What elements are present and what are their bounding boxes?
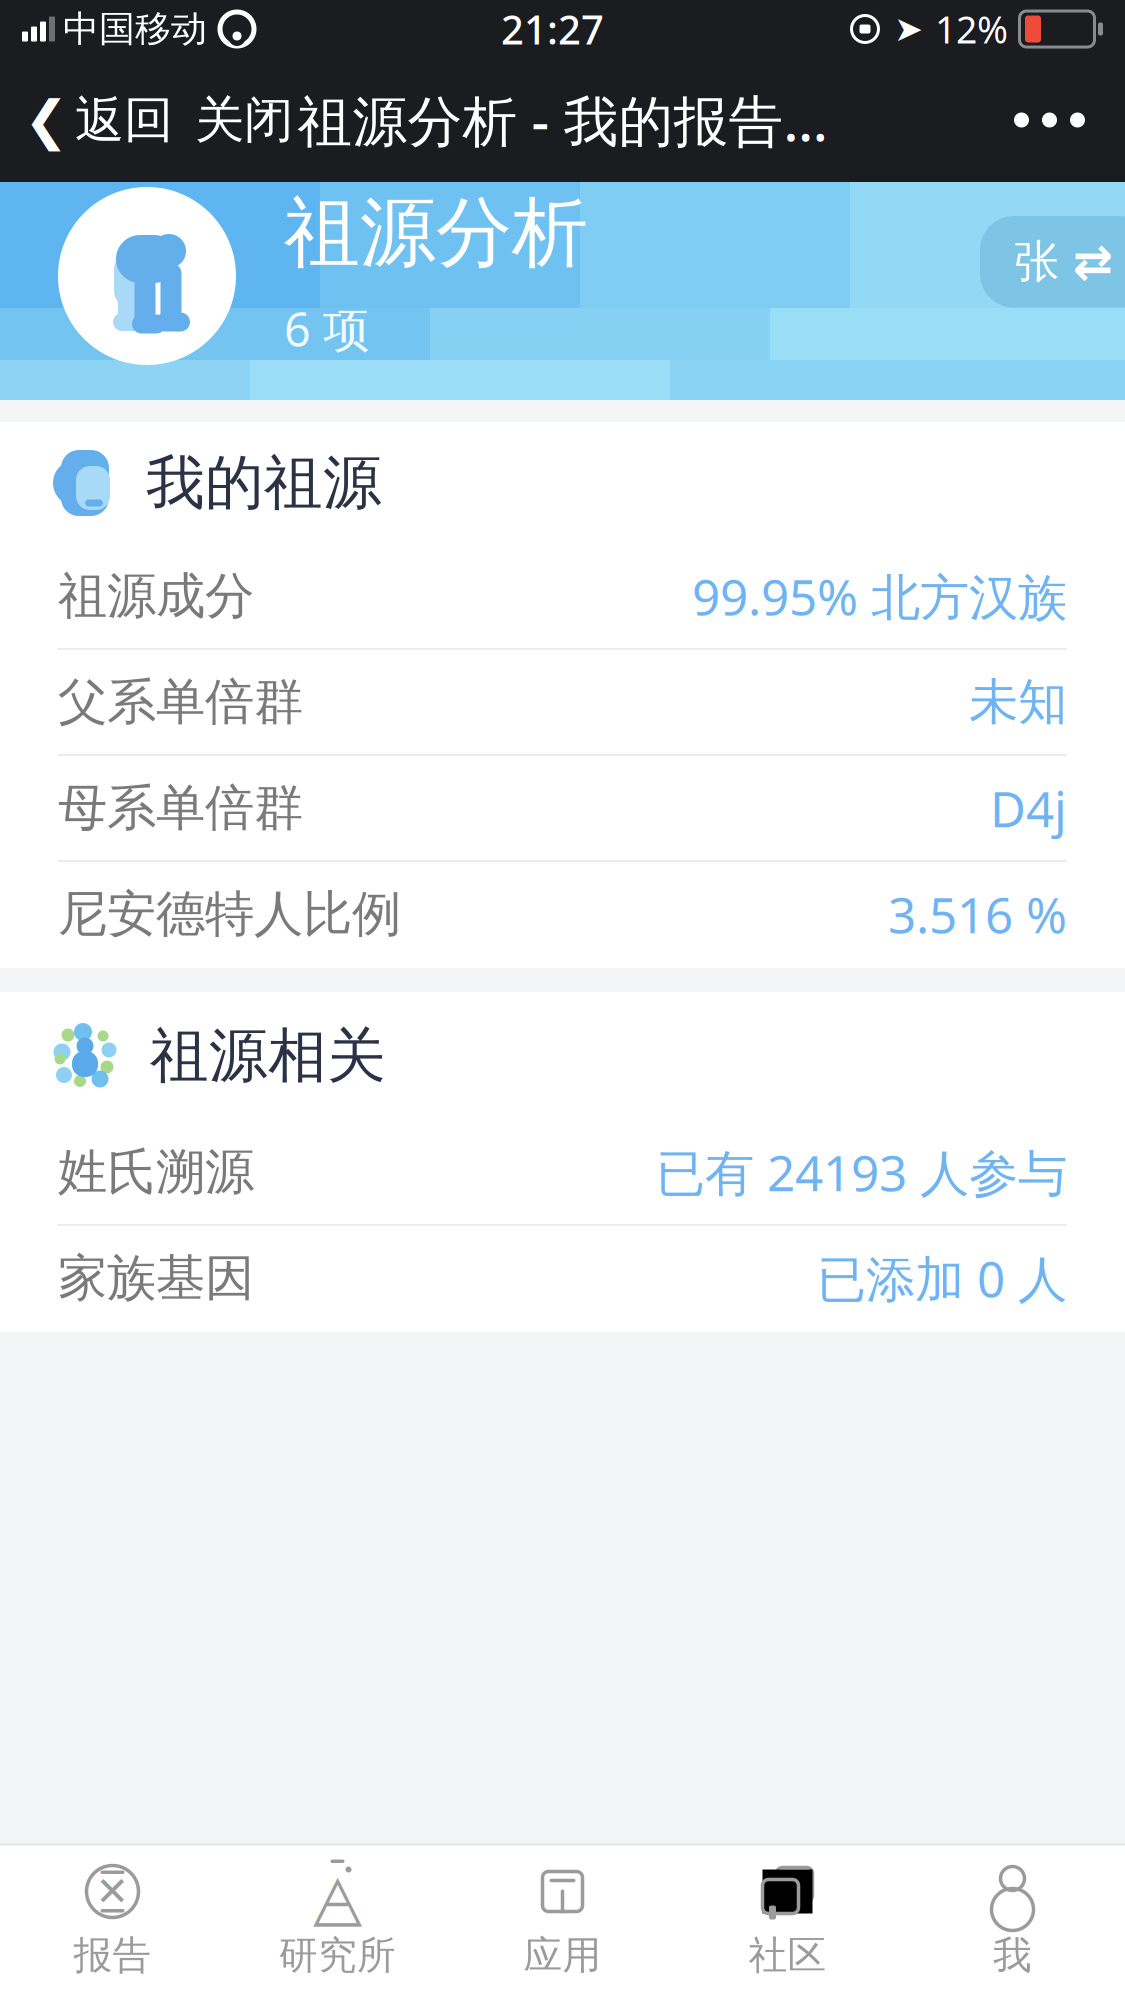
staticText: 尼安德特人比例: [58, 884, 401, 944]
button[interactable]: 姓氏溯源: [0, 1120, 1125, 1226]
button[interactable]: 祖源成分: [0, 544, 1125, 650]
button[interactable]: 家族基因: [0, 1226, 1125, 1332]
staticText: 祖源分析: [284, 186, 588, 280]
button[interactable]: 我: [900, 1845, 1125, 2001]
staticText: 返回: [75, 90, 173, 150]
staticText: 我的祖源: [146, 447, 382, 519]
staticText: 研究所: [279, 1931, 396, 1979]
button[interactable]: 母系单倍群: [0, 756, 1125, 862]
staticText: 家族基因: [58, 1248, 254, 1308]
staticText: ✕: [95, 1869, 129, 1914]
button[interactable]: △: [225, 1845, 450, 2001]
button[interactable]: 父系单倍群: [0, 650, 1125, 756]
staticText: 已添加 0 人: [817, 1245, 1067, 1311]
staticText: 99.95% 北方汉族: [692, 563, 1067, 629]
staticText: 中国移动: [63, 7, 207, 51]
staticText: 张: [1014, 234, 1059, 290]
button[interactable]: 尼安德特人比例: [0, 862, 1125, 968]
staticText: 我: [993, 1931, 1032, 1979]
staticText: ➤: [894, 9, 923, 49]
button[interactable]: ✕: [0, 1845, 225, 2001]
staticText: 已有 24193 人参与: [656, 1139, 1067, 1205]
staticText: 未知: [969, 672, 1067, 732]
staticText: 祖源相关: [150, 1020, 386, 1092]
staticText: 关闭: [195, 90, 293, 150]
staticText: 祖源分析 - 我的报告…: [297, 84, 827, 156]
staticText: 母系单倍群: [58, 778, 303, 838]
staticText: ❮: [24, 90, 69, 150]
button[interactable]: ❮: [0, 76, 173, 164]
staticText: ⇄: [1073, 235, 1113, 289]
staticText: 21:27: [501, 2, 604, 55]
staticText: 姓氏溯源: [58, 1142, 254, 1202]
button[interactable]: 关闭: [173, 76, 293, 164]
staticText: D4j: [990, 775, 1067, 841]
button[interactable]: 应用: [450, 1845, 675, 2001]
staticText: △: [313, 1860, 362, 1933]
staticText: 父系单倍群: [58, 672, 303, 732]
staticText: 应用: [523, 1931, 601, 1979]
button[interactable]: 张: [980, 216, 1125, 308]
button[interactable]: 社区: [675, 1845, 900, 2001]
staticText: 报告: [73, 1931, 151, 1979]
staticText: 6 项: [284, 298, 370, 360]
staticText: 社区: [748, 1931, 826, 1979]
button[interactable]: 更多: [988, 86, 1111, 153]
staticText: 3.516 %: [888, 881, 1067, 947]
staticText: 12%: [935, 4, 1008, 54]
staticText: 祖源成分: [58, 566, 254, 626]
